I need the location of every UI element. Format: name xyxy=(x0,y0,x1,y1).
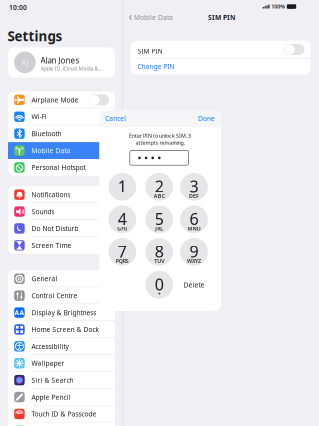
button[interactable]: 0 xyxy=(145,271,173,299)
staticText: GHI xyxy=(117,225,127,232)
button[interactable]: Airplane Mode xyxy=(8,91,115,108)
staticText: 5 xyxy=(155,208,164,229)
button[interactable]: Done xyxy=(185,110,215,127)
button[interactable]: Siri & Search xyxy=(8,372,115,389)
staticText: 2 xyxy=(155,176,164,197)
staticText: Sounds xyxy=(31,207,54,216)
staticText: Home Screen & Dock xyxy=(31,325,99,334)
staticText: Personal Hotspot xyxy=(31,163,85,172)
staticText: 8 xyxy=(155,241,164,262)
staticText: Notifications xyxy=(31,190,70,199)
staticText: Mobile Data xyxy=(134,13,173,22)
button[interactable]: AJ xyxy=(8,47,115,77)
staticText: attempts remaining. xyxy=(136,139,185,146)
button[interactable]: Notifications xyxy=(8,186,115,203)
staticText: AA xyxy=(14,308,24,317)
staticText: Done xyxy=(198,114,215,123)
button[interactable]: Wi-Fi xyxy=(8,108,115,125)
staticText: Bluetooth xyxy=(31,129,61,138)
button[interactable]: Wallpaper xyxy=(8,355,115,372)
staticText: Screen Time xyxy=(31,241,71,250)
button[interactable]: 6 xyxy=(180,205,208,233)
staticText: Accessibility xyxy=(31,342,68,351)
staticText: Siri & Search xyxy=(31,376,73,385)
staticText: TUV xyxy=(154,257,164,264)
button[interactable]: Home Screen & Dock xyxy=(8,321,115,338)
staticText: Enter PIN to unlock SIM. 3 xyxy=(129,132,191,139)
staticText: 1 xyxy=(118,176,127,197)
button[interactable]: Do Not Disturb xyxy=(8,220,115,237)
staticText: SIM PIN xyxy=(138,47,163,55)
button[interactable]: 8 xyxy=(145,238,173,266)
button[interactable]: Accessibility xyxy=(8,338,115,355)
button[interactable]: Change PIN xyxy=(131,58,311,74)
staticText: Change PIN xyxy=(138,62,175,71)
button[interactable]: Cancel xyxy=(99,110,135,127)
staticText: Settings xyxy=(8,27,63,45)
button[interactable]: 4 xyxy=(108,205,136,233)
button[interactable]: General xyxy=(8,270,115,287)
staticText: Airplane Mode xyxy=(31,95,78,104)
button[interactable]: Screen Time xyxy=(8,237,115,254)
staticText: Alan Jones xyxy=(40,55,79,66)
staticText: MNO xyxy=(187,225,200,232)
button[interactable]: Personal Hotspot xyxy=(8,159,115,176)
staticText: Wallpaper xyxy=(31,359,64,368)
button[interactable]: 5 xyxy=(145,205,173,233)
button[interactable]: Mobile Data xyxy=(125,11,177,23)
staticText: Touch ID & Passcode xyxy=(31,409,96,418)
staticText: 10:00 xyxy=(9,3,27,12)
staticText: 7 xyxy=(118,241,127,262)
staticText: SIM PIN xyxy=(208,13,235,22)
button[interactable]: Delete xyxy=(180,271,208,299)
button[interactable]: Mobile Data xyxy=(8,142,115,159)
button[interactable]: AA xyxy=(8,304,115,321)
staticText: General xyxy=(31,274,57,283)
staticText: PQRS xyxy=(116,257,129,264)
staticText: JKL xyxy=(155,225,163,232)
button[interactable]: 3 xyxy=(180,173,208,201)
staticText: DEF xyxy=(189,192,199,199)
staticText: Wi-Fi xyxy=(31,112,46,121)
staticText: AJ xyxy=(21,58,28,67)
staticText: 4 xyxy=(118,208,127,229)
staticText: ABC xyxy=(154,192,165,199)
staticText: 9 xyxy=(189,241,198,262)
button[interactable]: 1 xyxy=(108,173,136,201)
button[interactable]: 7 xyxy=(108,238,136,266)
staticText: Mobile Data xyxy=(31,146,70,155)
staticText: Apple ID, iCloud, Media &… xyxy=(40,65,102,72)
button[interactable]: Sounds xyxy=(8,203,115,220)
button[interactable]: Bluetooth xyxy=(8,125,115,142)
staticText: 3 xyxy=(189,176,198,197)
button[interactable]: 2 xyxy=(145,173,173,201)
staticText: Do Not Disturb xyxy=(31,224,78,233)
staticText: 0 xyxy=(155,274,164,295)
staticText: Display & Brightness xyxy=(31,308,96,317)
button[interactable]: Apple Pencil xyxy=(8,389,115,405)
staticText: Apple Pencil xyxy=(31,393,70,401)
staticText: Control Centre xyxy=(31,291,77,300)
staticText: Cancel xyxy=(105,114,126,123)
staticText: Delete xyxy=(183,280,204,289)
staticText: 6 xyxy=(189,208,198,229)
staticText: 100% xyxy=(271,3,285,10)
staticText: WXYZ xyxy=(187,257,201,264)
staticText: + xyxy=(158,290,161,297)
button[interactable]: Touch ID & Passcode xyxy=(8,405,115,422)
button[interactable]: Battery xyxy=(8,422,115,426)
button[interactable]: 9 xyxy=(180,238,208,266)
button[interactable]: Control Centre xyxy=(8,287,115,304)
